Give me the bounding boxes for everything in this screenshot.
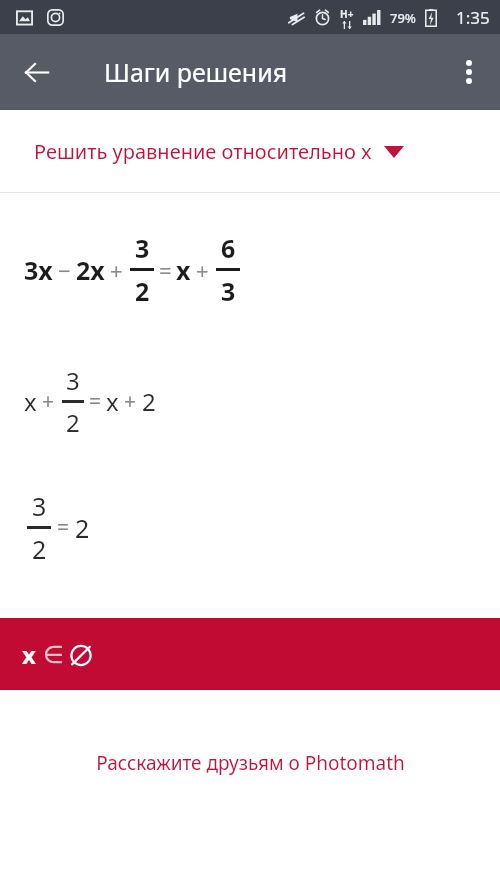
staticText: 79% — [390, 9, 416, 27]
staticText: 2 — [66, 406, 80, 439]
button[interactable]: Расскажите друзьям о Photomath — [0, 750, 500, 776]
staticText: = — [57, 513, 70, 542]
staticText: 2 — [142, 385, 156, 418]
staticText: 2x — [76, 253, 105, 287]
staticText: x — [106, 385, 119, 418]
staticText: 1:35 — [456, 6, 490, 29]
staticText: Расскажите друзьям о Photomath — [96, 750, 405, 776]
staticText: 3 — [221, 274, 236, 308]
staticText: = — [89, 387, 102, 416]
staticText: = — [159, 255, 172, 285]
button[interactable]: More options — [446, 49, 492, 95]
staticText: H+ — [340, 7, 354, 21]
button[interactable]: x — [0, 618, 500, 690]
staticText: 3 — [32, 489, 47, 523]
staticText: 3x — [24, 253, 53, 287]
staticText: + — [124, 387, 137, 416]
staticText: 3 — [66, 364, 80, 397]
staticText: 2 — [75, 511, 90, 545]
staticText: 2 — [135, 274, 150, 308]
staticText: + — [196, 255, 209, 285]
staticText: 3 — [135, 231, 150, 265]
button[interactable]: Back — [14, 50, 58, 94]
staticText: ∈ — [43, 641, 64, 669]
staticText: Шаги решения — [104, 55, 288, 89]
staticText: x — [176, 253, 191, 287]
staticText: x — [22, 638, 36, 671]
staticText: + — [110, 255, 123, 285]
staticText: + — [42, 387, 55, 416]
staticText: 6 — [221, 231, 236, 265]
staticText: Решить уравнение относительно x — [34, 138, 372, 165]
staticText: − — [58, 255, 71, 285]
staticText: 2 — [32, 532, 47, 566]
button[interactable]: Решить уравнение относительно x — [0, 110, 500, 192]
staticText: x — [24, 385, 37, 418]
